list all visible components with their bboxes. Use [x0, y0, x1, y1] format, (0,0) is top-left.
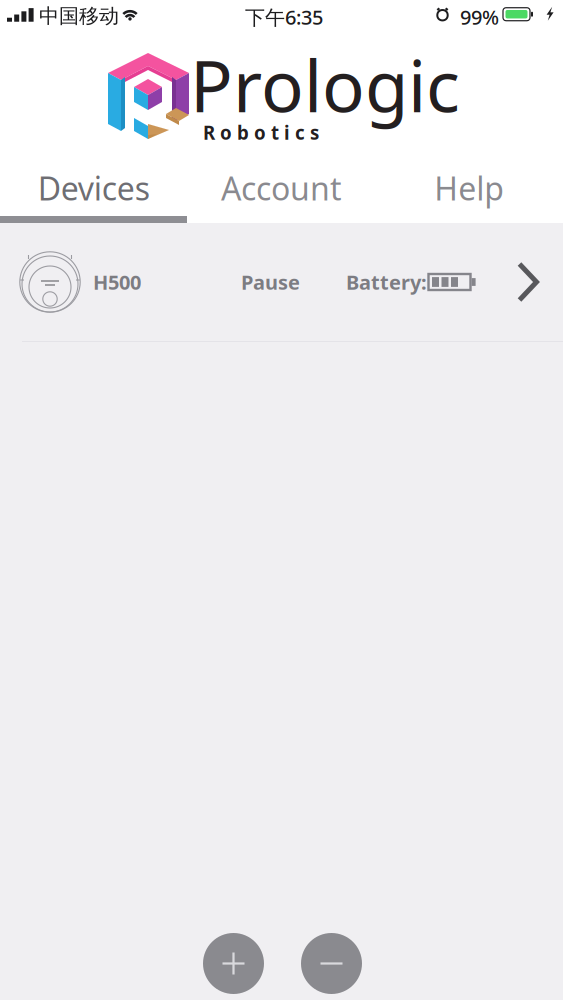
staticText: H500: [93, 269, 141, 295]
staticText: Prologic: [190, 38, 460, 132]
staticText: 99%: [460, 4, 499, 30]
button[interactable]: H500: [0, 223, 563, 341]
button[interactable]: Devices: [0, 157, 188, 219]
staticText: Account: [221, 167, 342, 209]
staticText: Battery:: [346, 269, 427, 295]
staticText: 下午6:35: [245, 4, 323, 30]
staticText: Devices: [38, 167, 150, 209]
staticText: R o b o t i c s: [203, 120, 319, 145]
staticText: Help: [434, 167, 504, 209]
staticText: Pause: [241, 269, 300, 295]
button[interactable]: Account: [188, 157, 375, 219]
button[interactable]: Help: [375, 157, 563, 219]
button[interactable]: Remove device: [301, 933, 362, 994]
staticText: 中国移动: [39, 4, 119, 28]
button[interactable]: Add device: [203, 933, 264, 994]
